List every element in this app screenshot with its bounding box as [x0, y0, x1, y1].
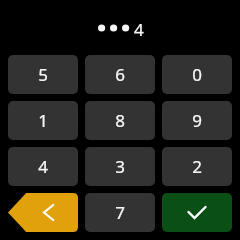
button[interactable]: 0	[162, 55, 232, 94]
button[interactable]: 7	[85, 193, 155, 232]
staticText: 2	[192, 155, 202, 178]
button[interactable]: 6	[85, 55, 155, 94]
button[interactable]: 1	[8, 101, 78, 140]
staticText: 7	[115, 201, 125, 224]
button[interactable]: 4	[8, 147, 78, 186]
button[interactable]: Backspace	[8, 193, 78, 232]
staticText: 8	[115, 109, 125, 132]
button[interactable]: 3	[85, 147, 155, 186]
staticText: 9	[192, 109, 202, 132]
staticText: 4	[134, 18, 144, 38]
button[interactable]: 9	[162, 101, 232, 140]
staticText: 3	[115, 155, 125, 178]
staticText: 6	[115, 63, 125, 86]
staticText: 5	[38, 63, 48, 86]
staticText: 4	[38, 155, 48, 178]
button[interactable]: 2	[162, 147, 232, 186]
staticText: 1	[38, 109, 48, 132]
staticText: 0	[192, 63, 202, 86]
button[interactable]: 8	[85, 101, 155, 140]
button[interactable]: Confirm	[162, 193, 232, 232]
button[interactable]: 5	[8, 55, 78, 94]
